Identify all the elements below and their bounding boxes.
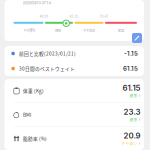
- staticText: -1.15: [124, 50, 138, 57]
- staticText: 23.3: [123, 107, 140, 117]
- button[interactable]: 体重 (Kg): [4, 79, 144, 102]
- staticText: 20.9: [123, 131, 140, 140]
- staticText: 標準: [55, 28, 61, 33]
- staticText: やや痩せ: [23, 28, 35, 33]
- staticText: 30日間のベストウェイト: [19, 65, 75, 72]
- staticText: 標準: [129, 93, 137, 98]
- staticText: 体重 (Kg): [23, 87, 44, 94]
- staticText: やや高い: [121, 141, 137, 146]
- staticText: 48.05: [39, 15, 48, 18]
- staticText: 脂肪率 (%): [23, 135, 47, 142]
- staticText: 標準: [129, 117, 137, 122]
- button[interactable]: 前回と比較(2023/01/21): [4, 46, 144, 61]
- staticText: 65.35: [69, 15, 78, 18]
- button[interactable]: Edit entry: [132, 33, 142, 43]
- staticText: 78.47: [99, 15, 108, 18]
- staticText: 2025/03/10 07:14: [22, 0, 50, 5]
- button[interactable]: 30日間のベストウェイト: [4, 61, 144, 76]
- button[interactable]: BMI: [4, 103, 144, 126]
- staticText: BMI: [23, 111, 31, 118]
- staticText: やや太め: [83, 28, 95, 33]
- button[interactable]: 脂肪率 (%): [4, 127, 144, 150]
- staticText: 61.15: [122, 83, 140, 93]
- staticText: 肥満: [118, 28, 124, 33]
- staticText: 61.15: [123, 65, 138, 72]
- staticText: 前回と比較(2023/01/21): [19, 50, 76, 57]
